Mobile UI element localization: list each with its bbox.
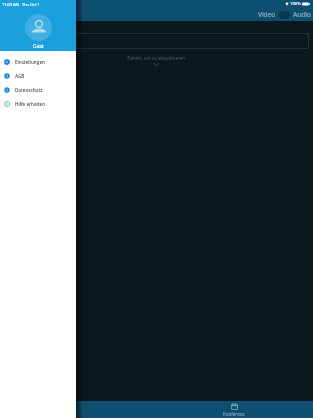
staticText: Audio [293, 10, 311, 19]
button[interactable]: Audio [292, 10, 312, 19]
staticText: 11:09 AM Thu Oct 1 [2, 2, 40, 7]
staticText: Datenschutz [15, 87, 43, 93]
button[interactable]: Datenschutz [0, 83, 76, 97]
staticText: Ziehen, um zu aktualisieren [127, 55, 186, 61]
button[interactable] [4, 33, 309, 49]
button[interactable]: Hilfe erhalten [0, 97, 76, 111]
staticText: 11:09 AM Thu Oct 1 [2, 2, 40, 7]
button[interactable]: AGB [0, 69, 76, 83]
staticText: Konferenz [223, 411, 245, 417]
staticText: Einstellungen [15, 59, 45, 65]
staticText: AGB [15, 73, 25, 79]
staticText: 100% [290, 1, 301, 7]
button[interactable]: Einstellungen [0, 55, 76, 69]
button[interactable]: Video [257, 10, 277, 19]
staticText: Video [258, 10, 276, 19]
button[interactable]: Switch between video and audio [279, 11, 290, 19]
button[interactable]: Chat [30, 401, 90, 418]
staticText: Hilfe erhalten [15, 101, 46, 107]
staticText: Gast [33, 43, 44, 50]
button[interactable]: Konferenz [204, 401, 264, 418]
